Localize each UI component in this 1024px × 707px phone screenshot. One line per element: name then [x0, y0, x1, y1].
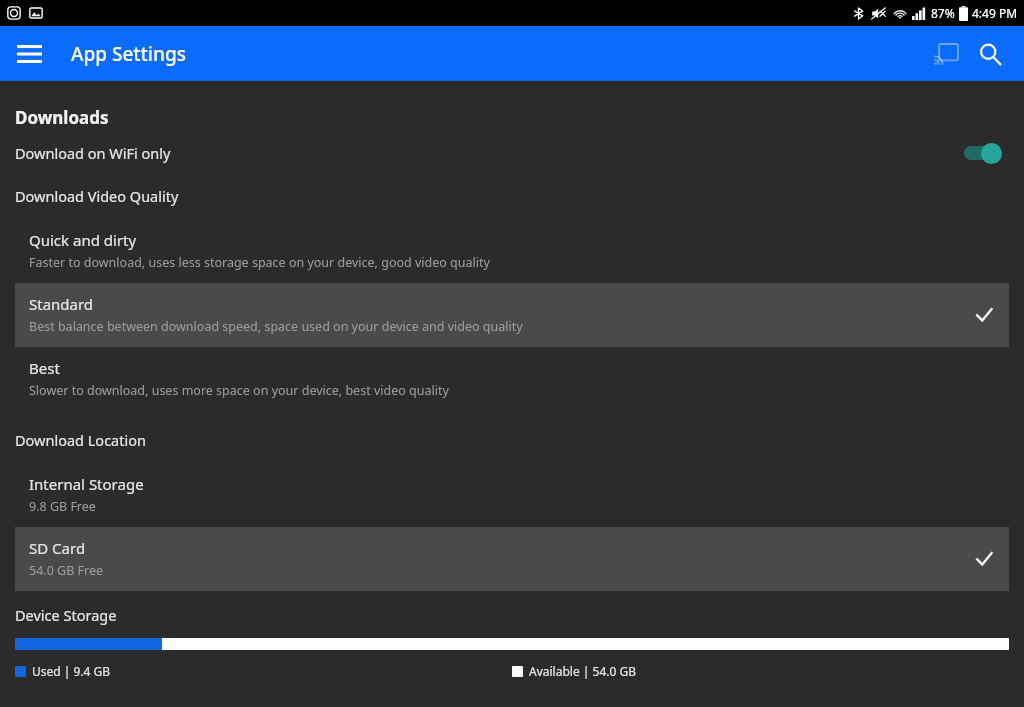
button[interactable]: Download on WiFi only	[0, 129, 1024, 177]
button[interactable]: SD Card	[15, 527, 1009, 591]
staticText: Standard	[29, 294, 94, 314]
staticText: Used | 9.4 GB	[32, 663, 111, 679]
button[interactable]: Internal Storage	[15, 463, 1009, 527]
staticText: 4:49 PM	[972, 5, 1018, 21]
staticText: Downloads	[15, 106, 109, 129]
staticText: 9.8 GB Free	[29, 498, 96, 515]
staticText: Internal Storage	[29, 474, 144, 494]
button[interactable]: Search	[968, 32, 1012, 76]
staticText: Download on WiFi only	[15, 143, 171, 163]
staticText: 87%	[931, 5, 955, 21]
staticText: Available | 54.0 GB	[529, 663, 636, 679]
staticText: Quick and dirty	[29, 230, 137, 250]
staticText: App Settings	[71, 41, 186, 67]
staticText: 54.0 GB Free	[29, 562, 104, 579]
staticText: Best balance between download speed, spa…	[29, 318, 523, 335]
staticText: Slower to download, uses more space on y…	[29, 382, 449, 399]
staticText: Download Location	[15, 430, 146, 450]
staticText: Faster to download, uses less storage sp…	[29, 254, 490, 271]
button[interactable]: Quick and dirty	[15, 219, 1009, 283]
button[interactable]: Download on WiFi only, on	[960, 140, 1006, 166]
button[interactable]: Best	[15, 347, 1009, 411]
button[interactable]: Standard	[15, 283, 1009, 347]
staticText: Device Storage	[15, 605, 117, 625]
staticText: Best	[29, 358, 60, 378]
button[interactable]: Open navigation menu	[8, 33, 50, 75]
staticText: SD Card	[29, 538, 86, 558]
staticText: Download Video Quality	[15, 186, 179, 206]
button[interactable]: Cast	[924, 32, 968, 76]
